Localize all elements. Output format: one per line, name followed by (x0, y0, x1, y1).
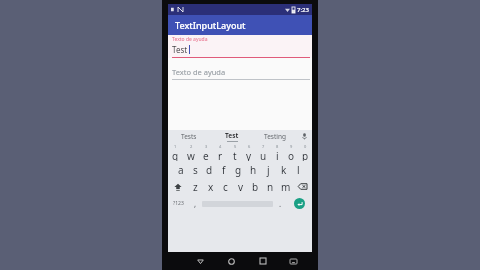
staticText: c (223, 180, 228, 194)
button[interactable]: Test (210, 130, 253, 143)
button[interactable]: n (263, 178, 278, 195)
staticText: 6 (248, 144, 251, 149)
staticText: Tests (181, 132, 197, 141)
button[interactable]: 4 (213, 144, 228, 161)
staticText: b (252, 180, 259, 194)
button[interactable]: Back (185, 252, 216, 270)
staticText: r (218, 149, 223, 161)
staticText: s (193, 163, 198, 177)
staticText: Test (172, 44, 188, 55)
staticText: y (246, 149, 252, 161)
staticText: t (233, 149, 237, 161)
button[interactable]: b (248, 178, 263, 195)
button[interactable]: a (174, 161, 188, 178)
button[interactable]: Testing (253, 130, 296, 143)
button[interactable]: 5 (228, 144, 242, 161)
staticText: g (235, 163, 242, 177)
staticText: w (187, 149, 195, 161)
button[interactable]: TextInputLayout (168, 15, 312, 35)
button[interactable]: Enter (294, 198, 305, 209)
button[interactable]: 1 (168, 144, 183, 161)
staticText: 3 (205, 144, 208, 149)
button[interactable]: Texto de ayuda (168, 67, 312, 80)
button[interactable]: Tests (168, 130, 210, 143)
staticText: 4 (219, 144, 222, 149)
staticText: v (238, 180, 244, 194)
button[interactable]: Texto de ayuda (168, 35, 312, 58)
button[interactable]: Switch keyboard (278, 252, 309, 270)
staticText: l (297, 163, 300, 177)
staticText: p (302, 149, 309, 161)
button[interactable]: 2 (183, 144, 198, 161)
staticText: x (208, 180, 214, 194)
button[interactable]: 8 (270, 144, 284, 161)
button[interactable]: 6 (242, 144, 256, 161)
staticText: 0 (304, 144, 307, 149)
button[interactable]: Home (216, 252, 247, 270)
staticText: h (250, 163, 257, 177)
button[interactable]: , (188, 195, 202, 212)
staticText: Test (225, 131, 239, 140)
button[interactable]: m (278, 178, 293, 195)
staticText: 5 (234, 144, 237, 149)
staticText: , (194, 198, 197, 209)
staticText: Texto de ayuda (172, 36, 208, 43)
button[interactable]: Backspace (293, 178, 312, 195)
button[interactable]: g (231, 161, 246, 178)
button[interactable]: f (216, 161, 231, 178)
button[interactable]: k (276, 161, 291, 178)
staticText: 7 (262, 144, 265, 149)
staticText: 2 (190, 144, 193, 149)
button[interactable]: Recent apps (247, 252, 278, 270)
staticText: d (206, 163, 213, 177)
staticText: ?123 (173, 200, 184, 207)
staticText: q (172, 149, 179, 161)
staticText: e (203, 149, 209, 161)
staticText: m (281, 180, 291, 194)
staticText: k (281, 163, 287, 177)
staticText: j (267, 163, 270, 177)
button[interactable]: v (233, 178, 248, 195)
button[interactable]: 0 (298, 144, 312, 161)
button[interactable]: Voice input (296, 130, 312, 143)
staticText: n (267, 180, 274, 194)
button[interactable]: s (188, 161, 202, 178)
button[interactable]: d (202, 161, 216, 178)
button[interactable]: c (218, 178, 233, 195)
button[interactable]: l (291, 161, 306, 178)
staticText: Testing (264, 132, 286, 141)
staticText: Texto de ayuda (172, 67, 226, 77)
staticText: 1 (174, 144, 177, 149)
button[interactable]: 7 (256, 144, 270, 161)
staticText: f (222, 163, 226, 177)
button[interactable]: 9 (284, 144, 298, 161)
button[interactable]: z (188, 178, 203, 195)
staticText: TextInputLayout (175, 19, 246, 31)
button[interactable]: ?123 (168, 195, 188, 212)
button[interactable]: h (246, 161, 261, 178)
staticText: 8 (276, 144, 279, 149)
staticText: u (260, 149, 267, 161)
button[interactable]: j (261, 161, 276, 178)
staticText: o (288, 149, 295, 161)
button[interactable]: Shift (168, 178, 188, 195)
staticText: a (178, 163, 184, 177)
button[interactable]: 3 (198, 144, 213, 161)
staticText: . (279, 198, 282, 209)
staticText: 9 (290, 144, 293, 149)
button[interactable]: x (203, 178, 218, 195)
staticText: i (276, 149, 279, 161)
staticText: z (193, 180, 198, 194)
staticText: 7:23 (297, 6, 309, 14)
button[interactable]: . (273, 195, 287, 212)
